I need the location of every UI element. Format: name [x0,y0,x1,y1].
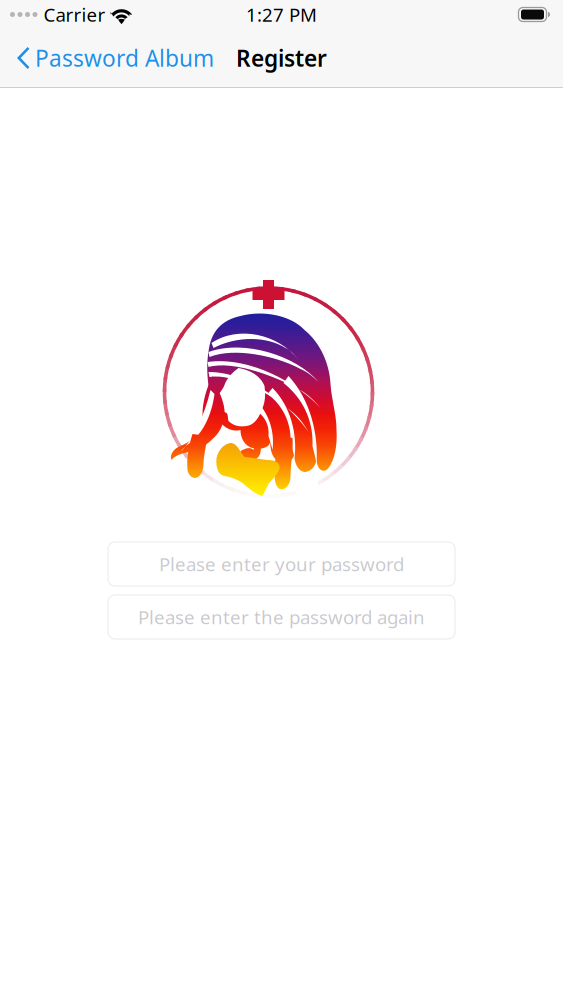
staticText: Please enter the password again [138,605,425,629]
staticText: Register [236,43,327,73]
button[interactable]: Password Album [0,35,214,81]
button[interactable]: Please enter the password again [108,595,455,639]
staticText: Please enter your password [159,552,404,576]
button[interactable]: Please enter your password [108,542,455,586]
staticText: 1:27 PM [246,2,317,27]
staticText: Password Album [35,43,214,73]
staticText: Carrier [43,2,105,27]
